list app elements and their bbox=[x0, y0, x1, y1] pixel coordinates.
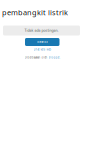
staticText: Diberdayakan oleh bbox=[24, 56, 48, 59]
staticText: Tidak ada postingan. bbox=[24, 28, 58, 33]
staticText: pembangkit listrik bbox=[2, 7, 68, 17]
button[interactable]: Lihat versi web bbox=[0, 47, 85, 52]
staticText: Lihat versi web bbox=[33, 48, 51, 51]
staticText: Blogger bbox=[48, 56, 59, 59]
button[interactable]: Blogger bbox=[48, 56, 59, 59]
staticText: Beranda bbox=[37, 40, 47, 44]
button[interactable]: Beranda bbox=[25, 38, 59, 46]
